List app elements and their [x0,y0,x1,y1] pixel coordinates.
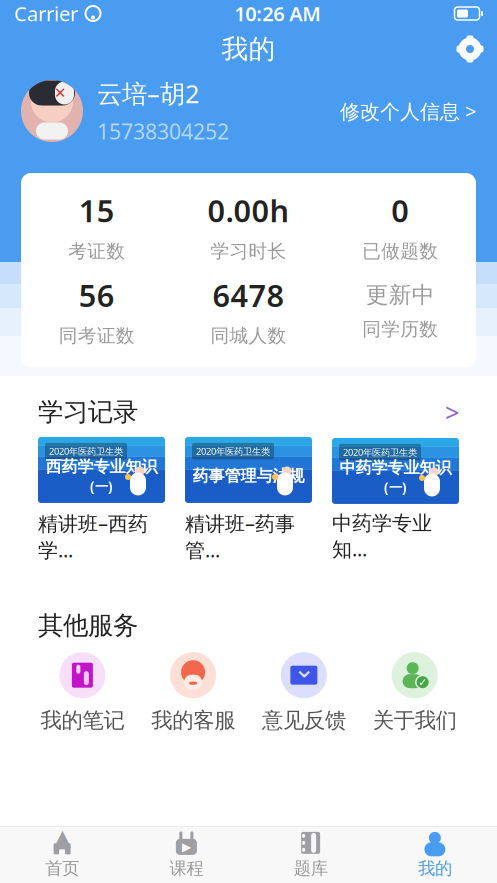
staticText: ⌄ [293,653,315,683]
button[interactable]: 我的 [373,827,497,883]
staticText: 我的 [418,858,452,879]
staticText: 云培–胡2 [97,76,199,110]
staticText: 更新中 [366,281,435,309]
staticText: ✓ [418,676,427,688]
staticText: 药事管理与法规 [192,466,304,486]
staticText: 0 [391,190,409,231]
staticText: 其他服务 [38,610,138,641]
button[interactable]: 修改个人信息 > [328,86,476,136]
staticText: 关于我们 [373,707,457,733]
button[interactable]: ⌄ [248,652,359,733]
staticText: 2020年医药卫生类 [49,445,123,457]
button[interactable]: 2020年医药卫生类 [185,437,312,563]
staticText: 0.00h [207,190,289,231]
staticText: (一) [90,477,113,495]
staticText: 中药学专业知... [332,511,432,562]
staticText: 同考证数 [59,324,135,347]
staticText: ✕ [54,85,66,101]
button[interactable]: ▶ [124,827,248,883]
staticText: 题库 [294,858,328,879]
staticText: 已做题数 [362,240,438,263]
staticText: 精讲班–药事管... [185,510,295,563]
staticText: 同学历数 [362,318,438,341]
staticText: ▶ [182,840,191,854]
staticText: 课程 [169,858,203,879]
button[interactable]: ✓ [359,652,470,733]
button[interactable]: 学习记录 [21,395,476,429]
button[interactable]: 2020年医药卫生类 [38,437,165,563]
staticText: 2020年医药卫生类 [343,446,417,458]
staticText: 意见反馈 [262,707,346,733]
staticText: 学习记录 [38,397,138,428]
staticText: 56 [79,275,115,315]
staticText: 15 [79,190,115,231]
staticText: Carrier [14,0,78,27]
staticText: > [445,395,459,429]
staticText: 学习时长 [210,240,286,263]
staticText: 中药学专业知识 [339,458,451,477]
button[interactable]: 我的客服 [138,652,249,733]
button[interactable]: 2020年医药卫生类 [332,438,459,562]
staticText: 6478 [212,275,284,315]
staticText: 2020年医药卫生类 [196,445,270,457]
button[interactable]: 我的笔记 [27,652,138,733]
staticText: 10:26 AM [234,0,321,27]
staticText: 精讲班–西药学... [38,510,148,563]
staticText: 西药学专业知识 [45,457,157,476]
staticText: 考证数 [68,240,125,263]
staticText: 我的客服 [151,707,235,733]
staticText: 我的 [221,33,275,65]
button[interactable]: 设置 [447,27,493,71]
staticText: 同城人数 [210,324,286,347]
staticText: 修改个人信息 > [340,98,476,124]
button[interactable]: ▲ [0,827,124,883]
staticText: 首页 [45,858,79,879]
staticText: 15738304252 [97,117,229,145]
button[interactable]: 题库 [248,827,373,883]
staticText: ▲ [54,824,71,850]
staticText: 我的笔记 [40,707,124,733]
staticText: (一) [384,478,407,496]
